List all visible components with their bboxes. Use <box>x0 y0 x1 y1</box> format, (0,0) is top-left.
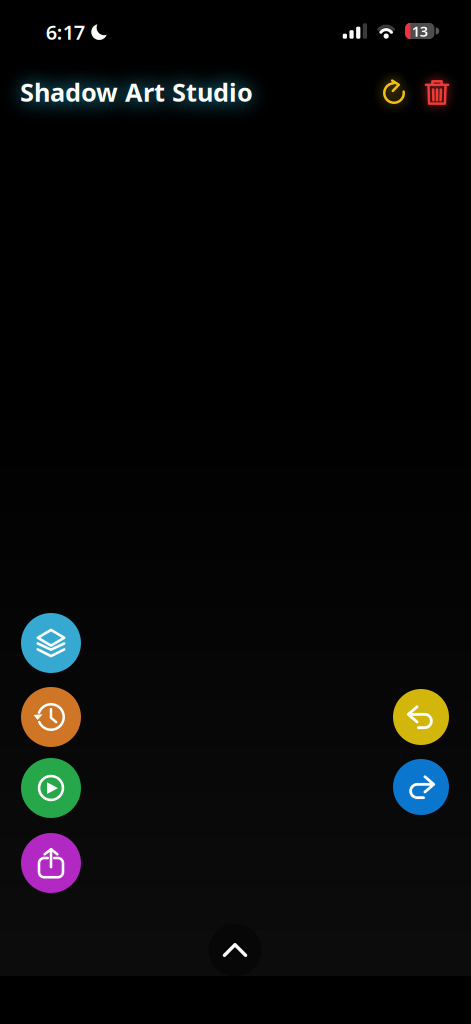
button[interactable]: Undo <box>393 689 449 745</box>
button[interactable]: History <box>21 687 81 747</box>
button[interactable]: Delete <box>417 72 457 112</box>
button[interactable]: Redo <box>393 759 449 815</box>
button[interactable]: Show toolbar <box>208 923 261 976</box>
button[interactable]: Reset <box>374 73 414 113</box>
button[interactable]: Play <box>21 758 81 818</box>
button[interactable]: Share <box>21 833 81 893</box>
staticText: 13 <box>412 21 428 41</box>
button[interactable]: Layers <box>21 613 81 673</box>
staticText: 6:17 <box>46 19 85 45</box>
staticText: Shadow Art Studio <box>20 75 253 109</box>
